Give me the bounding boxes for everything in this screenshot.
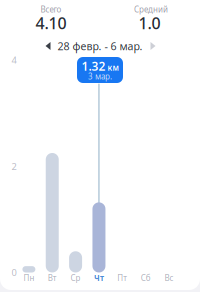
- staticText: 2: [11, 160, 16, 173]
- staticText: 3 мар.: [88, 71, 112, 82]
- staticText: км: [107, 62, 118, 73]
- staticText: Средний: [134, 4, 168, 15]
- staticText: Пт: [117, 273, 127, 283]
- button[interactable]: Next week: [143, 38, 163, 54]
- staticText: Вт: [48, 273, 57, 283]
- staticText: Ср: [71, 273, 81, 283]
- staticText: Сб: [141, 273, 151, 283]
- staticText: 1.32: [81, 58, 105, 74]
- staticText: 4.10: [35, 12, 66, 34]
- staticText: 4: [11, 54, 16, 66]
- staticText: Пн: [23, 273, 34, 283]
- staticText: 0: [11, 266, 16, 279]
- button[interactable]: Previous week: [38, 38, 58, 54]
- staticText: Вс: [164, 273, 173, 283]
- staticText: Чт: [94, 273, 104, 283]
- staticText: Всего: [40, 4, 61, 15]
- staticText: 28 февр. - 6 мар.: [57, 39, 142, 53]
- staticText: 1.0: [138, 12, 160, 34]
- button[interactable]: 1.32: [77, 57, 123, 83]
